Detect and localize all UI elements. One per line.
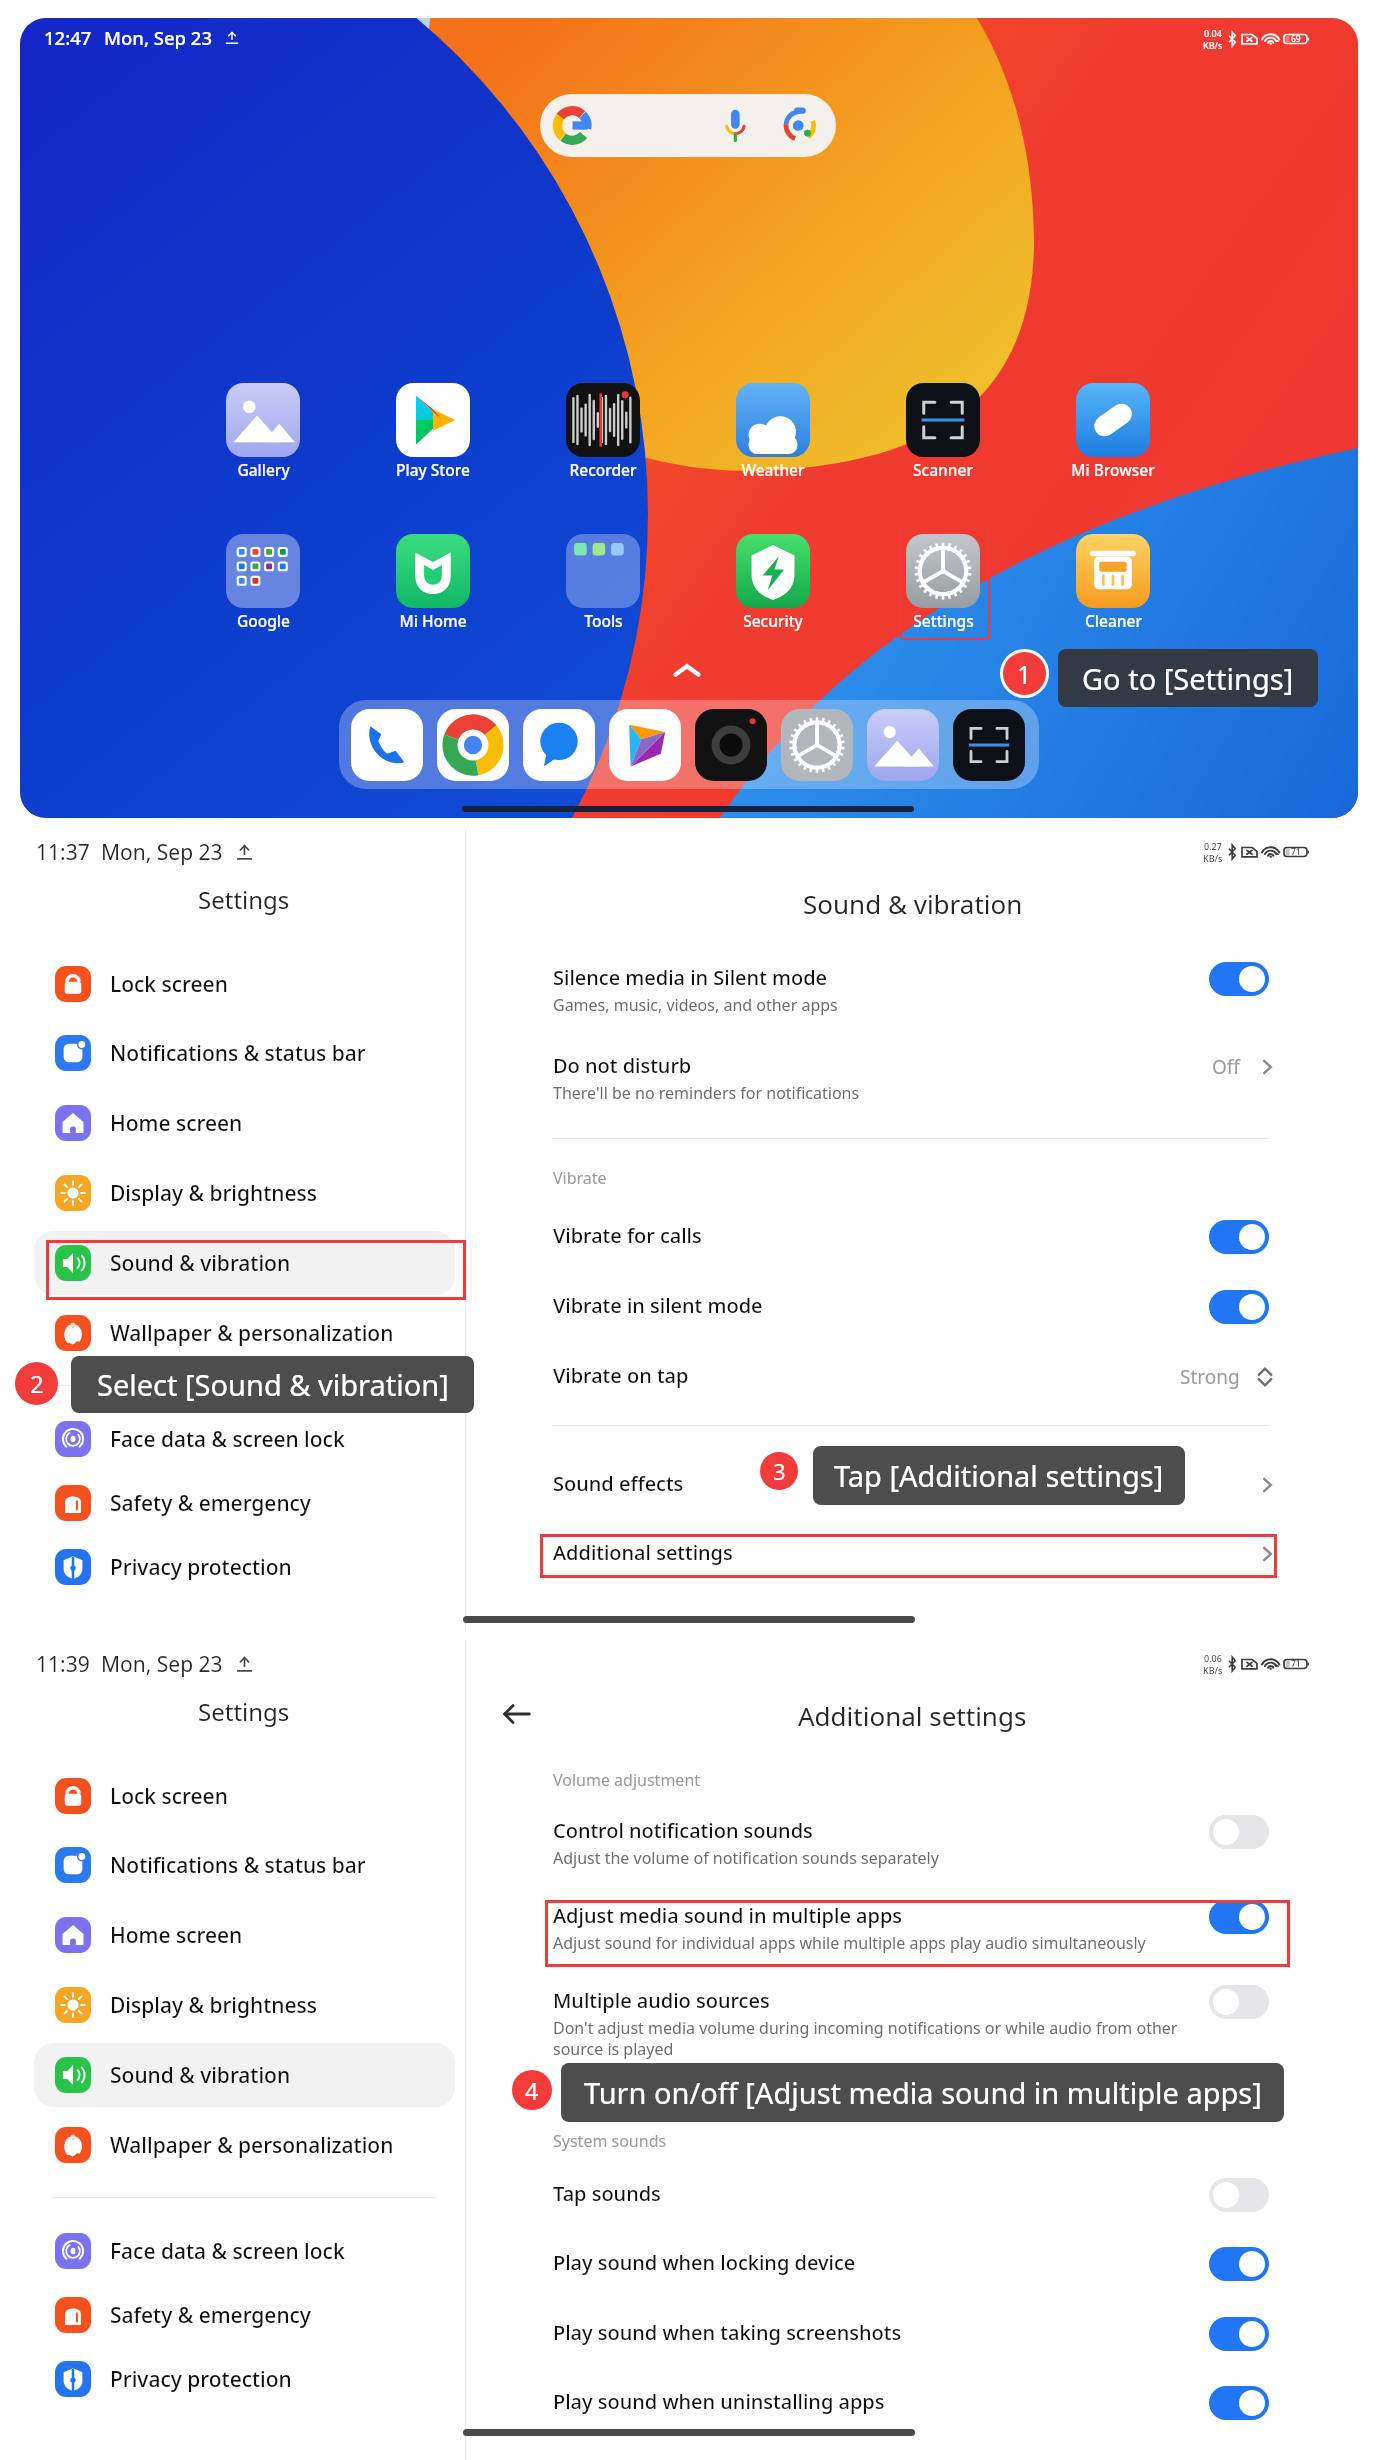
button[interactable]: Notifications & status bar <box>34 1833 455 1897</box>
button[interactable]: Play sound when locking device <box>553 2241 1269 2291</box>
button[interactable]: Home screen <box>34 1091 455 1155</box>
staticText: Control notification sounds <box>553 1817 813 1844</box>
button[interactable]: Lock screen <box>34 952 455 1016</box>
button[interactable]: Play sound when uninstalling apps <box>1209 2386 1269 2420</box>
button[interactable]: Scanner <box>953 709 1025 781</box>
staticText: Strong <box>1180 1364 1240 1390</box>
staticText: Vibrate on tap <box>553 1362 689 1389</box>
staticText: KB/s <box>1203 39 1223 51</box>
button[interactable]: Scanner <box>883 383 1003 480</box>
button[interactable]: Home screen <box>34 1903 455 1967</box>
button[interactable]: Mi Home <box>373 534 493 631</box>
button[interactable]: Vibrate for calls <box>1209 1220 1269 1254</box>
button[interactable]: Play sound when uninstalling apps <box>553 2380 1269 2430</box>
staticText: System sounds <box>553 2130 667 2152</box>
button[interactable]: Display & brightness <box>34 1161 455 1225</box>
button[interactable]: Gallery <box>203 383 323 480</box>
staticText: Settings <box>198 1695 290 1728</box>
staticText: Play sound when taking screenshots <box>553 2319 902 2346</box>
button[interactable]: Silence media in Silent mode <box>1209 962 1269 996</box>
staticText: Google <box>237 610 290 631</box>
button[interactable]: Google search <box>540 94 836 157</box>
button[interactable]: Tap sounds <box>553 2172 1269 2222</box>
button[interactable]: Gallery <box>867 709 939 781</box>
button[interactable]: Chrome <box>437 709 509 781</box>
button[interactable]: Settings <box>883 534 1003 631</box>
button[interactable]: Play Store <box>373 383 493 480</box>
staticText: Settings <box>198 883 290 916</box>
button[interactable]: Multiple audio sources <box>553 1979 1269 2041</box>
button[interactable]: Tools <box>543 534 663 631</box>
button[interactable]: Face data & screen lock <box>34 1407 455 1471</box>
button[interactable]: Tap sounds <box>1209 2178 1269 2212</box>
button[interactable]: Multiple audio sources <box>1209 1985 1269 2019</box>
staticText: Cleaner <box>1085 610 1142 631</box>
button[interactable]: Play sound when taking screenshots <box>553 2311 1269 2361</box>
staticText: Games, music, videos, and other apps <box>553 994 838 1016</box>
button[interactable]: Wallpaper & personalization <box>34 2113 455 2177</box>
staticText: Mon, Sep 23 <box>104 25 212 50</box>
button[interactable]: Mi Browser <box>1053 383 1173 480</box>
button[interactable]: Additional settings <box>553 1531 1269 1581</box>
button[interactable]: Adjust media sound in multiple apps <box>553 1894 1269 1956</box>
button[interactable]: Google <box>203 534 323 631</box>
button[interactable]: Weather <box>713 383 833 480</box>
button[interactable]: Silence media in Silent mode <box>553 956 1269 1018</box>
staticText: Tap sounds <box>553 2180 661 2207</box>
staticText: Go to [Settings] <box>1082 659 1294 698</box>
button[interactable]: Notifications & status bar <box>34 1021 455 1085</box>
button[interactable]: Control notification sounds <box>553 1809 1269 1871</box>
button[interactable]: Safety & emergency <box>34 2283 455 2347</box>
button[interactable]: Lock screen <box>34 1764 455 1828</box>
button[interactable]: Messages <box>523 709 595 781</box>
staticText: Adjust the volume of notification sounds… <box>553 1847 939 1869</box>
staticText: Multiple audio sources <box>553 1987 770 2014</box>
staticText: Mi Home <box>399 610 467 631</box>
staticText: Adjust media sound in multiple apps <box>553 1902 903 1929</box>
staticText: 2 <box>30 1367 44 1400</box>
button[interactable]: Wallpaper & personalization <box>34 1301 455 1365</box>
button[interactable]: Play sound when locking device <box>1209 2247 1269 2281</box>
button[interactable]: Cleaner <box>1053 534 1173 631</box>
staticText: Do not disturb <box>553 1052 692 1079</box>
staticText: 11:39 <box>36 1650 90 1679</box>
staticText: Turn on/off [Adjust media sound in multi… <box>584 2073 1262 2112</box>
button[interactable]: Sound & vibration <box>34 2043 455 2107</box>
staticText: Sound & vibration <box>803 886 1023 921</box>
staticText: Off <box>1212 1054 1240 1080</box>
staticText: 1 <box>1017 657 1032 691</box>
button[interactable]: Camera <box>695 709 767 781</box>
button[interactable]: Vibrate on tap <box>553 1354 1269 1404</box>
button[interactable]: Play sound when taking screenshots <box>1209 2317 1269 2351</box>
staticText: Privacy protection <box>110 2365 292 2394</box>
button[interactable]: Safety & emergency <box>34 1471 455 1535</box>
button[interactable]: Recorder <box>543 383 663 480</box>
button[interactable]: Sound effects <box>553 1462 1269 1512</box>
button[interactable]: Do not disturb <box>553 1044 1269 1106</box>
button[interactable]: Control notification sounds <box>1209 1815 1269 1849</box>
button[interactable]: Adjust media sound in multiple apps <box>1209 1900 1269 1934</box>
button[interactable]: Display & brightness <box>34 1973 455 2037</box>
button[interactable]: Vibrate for calls <box>553 1214 1269 1264</box>
button[interactable]: Sound & vibration <box>34 1231 455 1295</box>
staticText: Vibrate in silent mode <box>553 1292 763 1319</box>
button[interactable]: Vibrate in silent mode <box>553 1284 1269 1334</box>
button[interactable]: Face data & screen lock <box>34 2219 455 2283</box>
button[interactable]: Security <box>713 534 833 631</box>
staticText: Safety & emergency <box>110 2301 311 2330</box>
button[interactable]: Privacy protection <box>34 2347 455 2411</box>
staticText: Mon, Sep 23 <box>101 1650 223 1679</box>
button[interactable]: Vibrate in silent mode <box>1209 1290 1269 1324</box>
staticText: 69 <box>1291 33 1301 45</box>
staticText: 4 <box>525 2075 539 2106</box>
button[interactable]: Phone <box>351 709 423 781</box>
button[interactable]: Back <box>503 1700 531 1728</box>
staticText: Face data & screen lock <box>110 1425 345 1454</box>
staticText: Wallpaper & personalization <box>110 2131 394 2160</box>
button[interactable]: Play Store <box>609 709 681 781</box>
staticText: Adjust sound for individual apps while m… <box>553 1932 1146 1954</box>
button[interactable]: Privacy protection <box>34 1535 455 1599</box>
staticText: Display & brightness <box>110 1179 317 1208</box>
button[interactable]: Settings <box>781 709 853 781</box>
staticText: Play sound when locking device <box>553 2249 856 2276</box>
